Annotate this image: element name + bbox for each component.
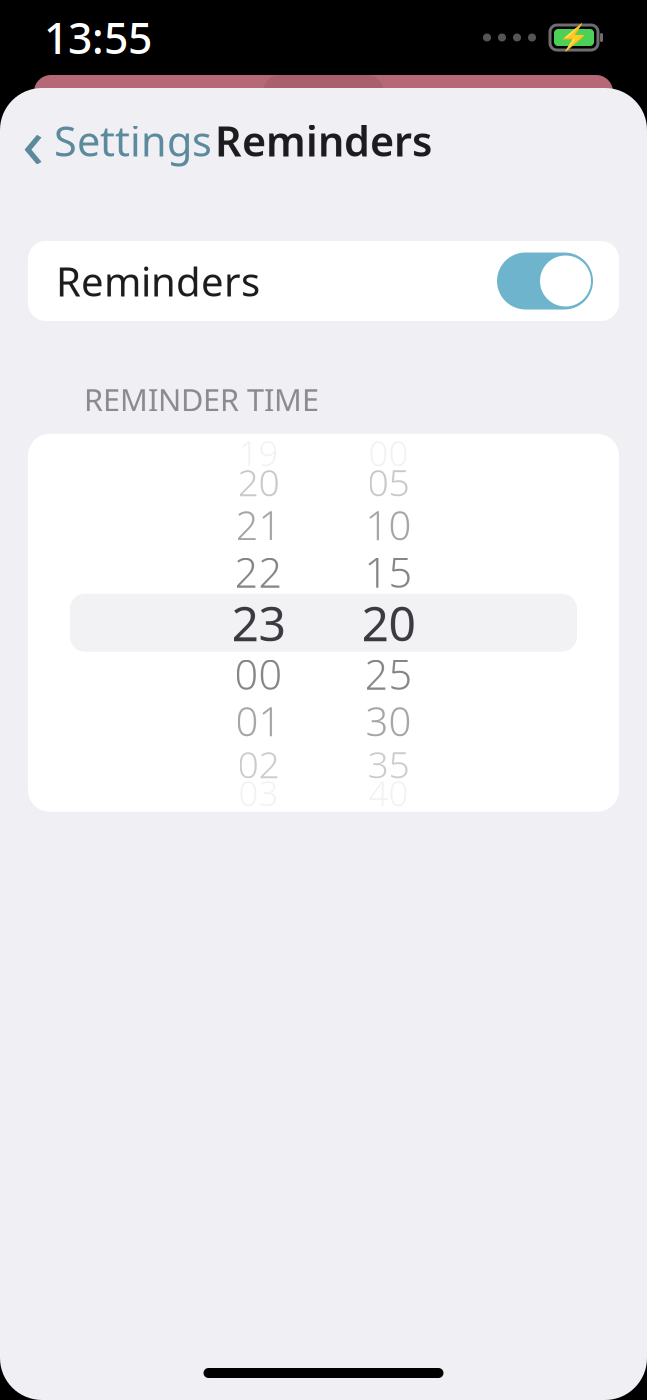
staticText: 20 — [361, 591, 415, 655]
staticText: 03 — [238, 770, 278, 816]
staticText: REMINDER TIME — [84, 379, 319, 420]
staticText: 01 — [235, 694, 281, 747]
staticText: Reminders — [56, 254, 260, 307]
staticText: 30 — [365, 694, 411, 747]
staticText: 23 — [231, 591, 285, 655]
staticText: 02 — [237, 739, 279, 788]
staticText: 40 — [368, 770, 408, 816]
staticText: 21 — [235, 498, 281, 551]
staticText: 20 — [237, 457, 279, 506]
staticText: 13:55 — [44, 9, 152, 66]
staticText: 35 — [367, 739, 409, 788]
staticText: ⚡ — [558, 23, 590, 52]
staticText: ‹ — [22, 93, 44, 188]
staticText: Settings — [54, 113, 212, 168]
staticText: 10 — [365, 498, 411, 551]
staticText: 00 — [234, 646, 282, 701]
staticText: 22 — [234, 544, 282, 599]
staticText: 00 — [368, 430, 408, 476]
button[interactable]: ‹ — [6, 109, 228, 171]
staticText: 25 — [364, 646, 412, 701]
staticText: 15 — [364, 544, 412, 599]
staticText: 19 — [238, 430, 278, 476]
button[interactable]: Reminders — [28, 241, 619, 321]
staticText: 05 — [367, 457, 409, 506]
staticText: Reminders — [215, 113, 432, 168]
